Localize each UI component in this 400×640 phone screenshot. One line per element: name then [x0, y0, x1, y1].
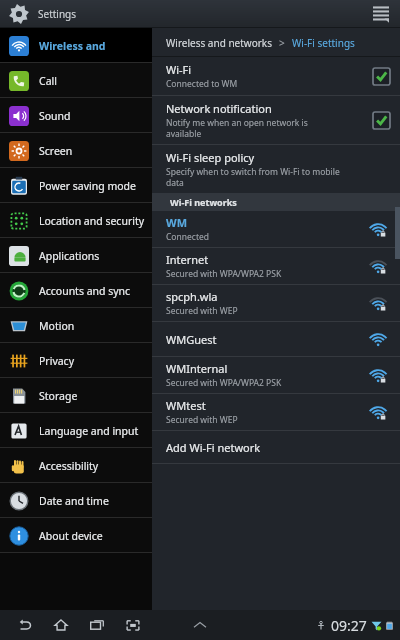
staticText: Wi-Fi networks	[170, 196, 237, 208]
button[interactable]: About device	[0, 518, 152, 553]
staticText: Screen	[39, 144, 73, 158]
button[interactable]: Power saving mode	[0, 168, 152, 203]
staticText: Language and input	[39, 424, 139, 438]
staticText: Specify when to switch from Wi-Fi to mob…	[166, 166, 340, 188]
button[interactable]: Wireless and networks	[0, 28, 152, 63]
button[interactable]: Network notification checkbox	[373, 112, 390, 129]
staticText: About device	[39, 529, 103, 543]
button[interactable]: Motion	[0, 308, 152, 343]
button[interactable]: Location and security	[0, 203, 152, 238]
staticText: Secured with WPA/WPA2 PSK	[166, 268, 282, 280]
staticText: Connected	[166, 231, 209, 243]
button[interactable]: WMtest	[152, 394, 400, 430]
button[interactable]: Screen	[0, 133, 152, 168]
button[interactable]: Menu	[368, 1, 394, 27]
button[interactable]: Sound	[0, 98, 152, 133]
button[interactable]: Internet	[152, 248, 400, 284]
staticText: Wi-Fi	[166, 62, 192, 77]
staticText: WMGuest	[166, 332, 217, 347]
button[interactable]: Network notification	[152, 96, 400, 144]
staticText: WMInternal	[166, 361, 228, 376]
button[interactable]: Date and time	[0, 483, 152, 518]
staticText: Settings	[38, 7, 77, 21]
staticText: Motion	[39, 319, 75, 333]
staticText: Wireless and networks	[39, 39, 152, 53]
button[interactable]: Call	[0, 63, 152, 98]
staticText: >	[279, 36, 285, 50]
staticText: Network notification	[166, 101, 272, 116]
button[interactable]: spcph.wla	[152, 285, 400, 321]
staticText: WM	[166, 215, 188, 230]
button[interactable]: Wi-Fi	[152, 57, 400, 95]
staticText: Location and security	[39, 214, 145, 228]
staticText: Wi-Fi sleep policy	[166, 150, 255, 165]
staticText: Call	[39, 74, 57, 88]
button[interactable]: Back	[14, 614, 36, 636]
staticText: Applications	[39, 249, 100, 263]
staticText: Wireless and networks	[166, 36, 272, 50]
staticText: Accounts and sync	[39, 284, 131, 298]
staticText: Secured with WEP	[166, 414, 238, 426]
button[interactable]: Home	[50, 614, 72, 636]
button[interactable]: Storage	[0, 378, 152, 413]
staticText: Notify me when an open network is availa…	[166, 117, 308, 139]
button[interactable]: Accounts and sync	[0, 273, 152, 308]
staticText: Sound	[39, 109, 71, 123]
button[interactable]: Wi-Fi checkbox	[373, 68, 390, 85]
button[interactable]: Language and input	[0, 413, 152, 448]
staticText: Accessibility	[39, 459, 99, 473]
button[interactable]: Recents	[86, 614, 108, 636]
button[interactable]: Privacy	[0, 343, 152, 378]
button[interactable]: WM	[152, 211, 400, 247]
button[interactable]: WMGuest	[152, 322, 400, 356]
staticText: Add Wi-Fi network	[166, 440, 261, 455]
staticText: spcph.wla	[166, 289, 218, 304]
button[interactable]: Accessibility	[0, 448, 152, 483]
staticText: Privacy	[39, 354, 75, 368]
button[interactable]: WMInternal	[152, 357, 400, 393]
staticText: Connected to WM	[166, 78, 238, 90]
staticText: Internet	[166, 252, 209, 267]
staticText: Secured with WEP	[166, 305, 238, 317]
staticText: 09:27	[331, 616, 367, 635]
button[interactable]: Expand	[188, 613, 212, 637]
staticText: Storage	[39, 389, 78, 403]
button[interactable]: Wi-Fi sleep policy	[152, 145, 400, 193]
staticText: Wi-Fi settings	[292, 36, 355, 50]
staticText: Date and time	[39, 494, 109, 508]
button[interactable]: Add Wi-Fi network	[152, 431, 400, 463]
staticText: WMtest	[166, 398, 206, 413]
staticText: Secured with WPA/WPA2 PSK	[166, 377, 282, 389]
button[interactable]: Screenshot	[122, 614, 144, 636]
staticText: Power saving mode	[39, 179, 136, 193]
button[interactable]: Applications	[0, 238, 152, 273]
